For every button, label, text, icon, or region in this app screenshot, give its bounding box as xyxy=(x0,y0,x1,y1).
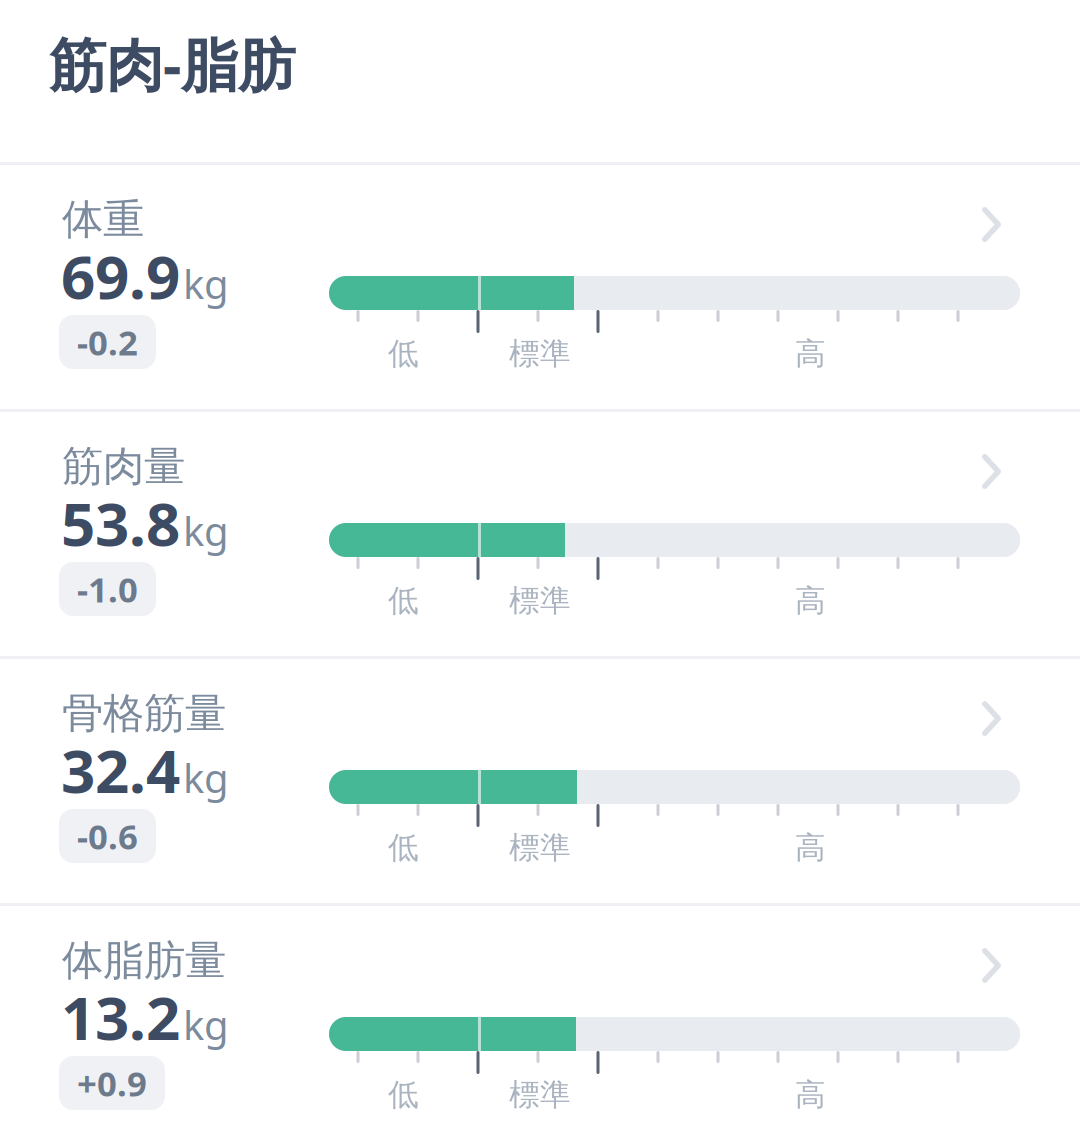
button[interactable]: 体重 xyxy=(0,162,1080,409)
button[interactable]: 筋肉量 xyxy=(0,409,1080,656)
staticText: 高 xyxy=(795,582,826,620)
staticText: 低 xyxy=(388,582,419,620)
staticText: -0.2 xyxy=(77,319,138,365)
staticText: 筋肉量 xyxy=(62,441,185,492)
staticText: 高 xyxy=(795,335,826,373)
staticText: 筋肉-脂肪 xyxy=(49,26,295,102)
staticText: 高 xyxy=(795,1076,826,1114)
staticText: 32.4 xyxy=(61,730,180,810)
staticText: 69.9 xyxy=(61,236,180,316)
staticText: 標準 xyxy=(509,829,571,867)
staticText: 体重 xyxy=(62,194,144,245)
staticText: kg xyxy=(183,504,229,557)
staticText: 13.2 xyxy=(61,977,180,1057)
staticText: +0.9 xyxy=(77,1060,147,1106)
staticText: -1.0 xyxy=(77,566,138,612)
staticText: 53.8 xyxy=(61,483,180,563)
staticText: 骨格筋量 xyxy=(62,688,226,739)
staticText: 標準 xyxy=(509,582,571,620)
staticText: 標準 xyxy=(509,335,571,373)
staticText: 標準 xyxy=(509,1076,571,1114)
staticText: 低 xyxy=(388,829,419,867)
button[interactable]: 体脂肪量 xyxy=(0,903,1080,1128)
staticText: 高 xyxy=(795,829,826,867)
staticText: kg xyxy=(183,257,229,310)
staticText: kg xyxy=(183,751,229,804)
staticText: -0.6 xyxy=(77,813,138,859)
staticText: 低 xyxy=(388,1076,419,1114)
staticText: kg xyxy=(183,998,229,1051)
staticText: 低 xyxy=(388,335,419,373)
button[interactable]: 骨格筋量 xyxy=(0,656,1080,903)
staticText: 体脂肪量 xyxy=(62,935,226,986)
